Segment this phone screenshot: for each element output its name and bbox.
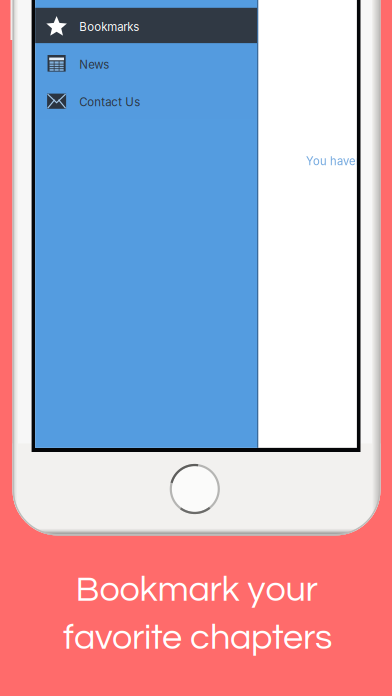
staticText: News xyxy=(79,58,109,71)
staticText: Contact Us xyxy=(79,95,140,109)
staticText: You haven't bookmarked any chapters yet. xyxy=(306,154,392,168)
staticText: Bookmarks xyxy=(79,20,139,34)
button[interactable]: News xyxy=(35,44,257,82)
button[interactable]: Bookmarks xyxy=(35,8,257,43)
staticText: Bookmark your xyxy=(76,571,318,608)
button[interactable]: Contact Us xyxy=(35,82,257,119)
staticText: favorite chapters xyxy=(63,619,332,656)
